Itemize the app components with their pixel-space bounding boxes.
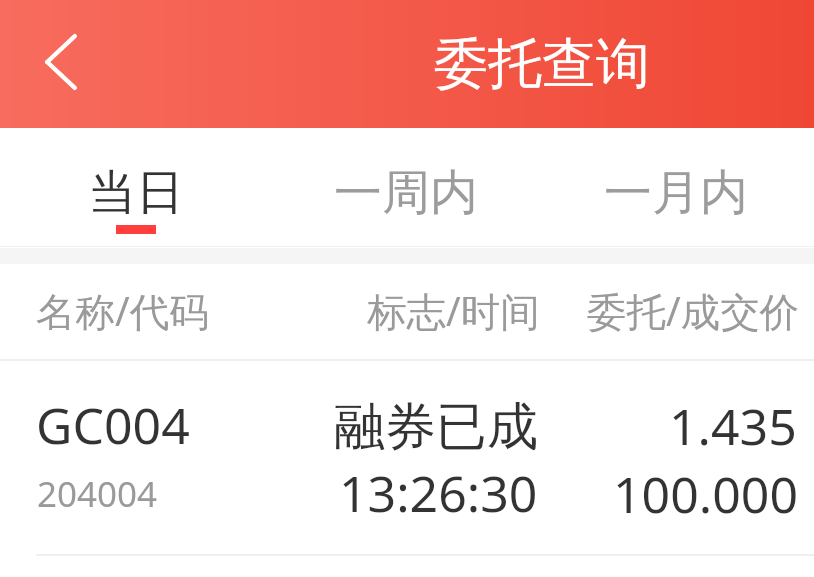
staticText: 标志/时间 — [367, 284, 540, 338]
staticText: 一周内 — [334, 163, 478, 223]
staticText: 13:26:30 — [339, 459, 538, 527]
staticText: 名称/代码 — [36, 284, 209, 338]
button[interactable]: Back — [6, 0, 116, 128]
button[interactable]: 当日 — [1, 128, 271, 245]
staticText: 一月内 — [604, 163, 748, 223]
staticText: 委托查询 — [434, 30, 650, 98]
staticText: 委托/成交价 — [587, 284, 800, 338]
staticText: 100.000 — [613, 460, 798, 528]
staticText: GC004 — [36, 391, 190, 459]
button[interactable]: 一月内 — [541, 128, 811, 245]
staticText: 当日 — [88, 163, 184, 223]
staticText: 融券已成 — [334, 395, 538, 459]
button[interactable]: 一周内 — [271, 128, 541, 245]
button[interactable]: GC004 — [0, 361, 814, 555]
staticText: 204004 — [37, 470, 158, 518]
staticText: 1.435 — [669, 392, 797, 460]
